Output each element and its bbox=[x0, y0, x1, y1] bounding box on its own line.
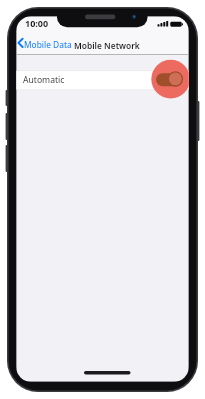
staticText: Mobile Network bbox=[74, 40, 140, 51]
button[interactable] bbox=[151, 60, 190, 99]
staticText: 10:00 bbox=[25, 17, 49, 29]
button[interactable]: Mobile Data bbox=[16, 36, 74, 51]
button[interactable]: Automatic bbox=[16, 71, 189, 90]
staticText: Automatic bbox=[23, 74, 65, 86]
staticText: Mobile Data bbox=[24, 39, 72, 50]
